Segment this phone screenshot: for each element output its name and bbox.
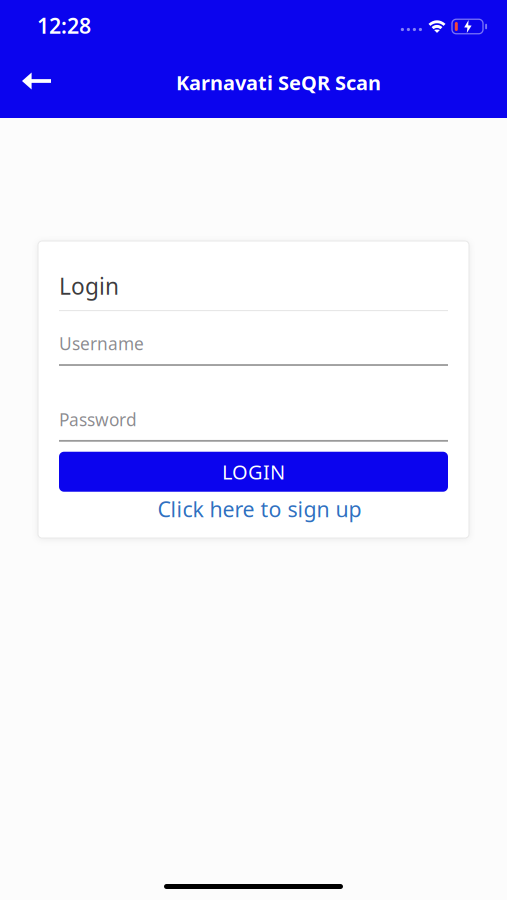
staticText: 12:28 [37,11,91,40]
textField[interactable]: Username [59,332,448,366]
button[interactable]: Click here to sign up [59,495,448,523]
staticText: LOGIN [222,458,285,485]
button[interactable]: Back [0,62,51,103]
staticText: Username [59,332,144,355]
staticText: Karnavati SeQR Scan [176,69,381,96]
staticText: Click here to sign up [157,495,361,523]
staticText: Login [59,271,119,301]
staticText: Password [59,408,137,431]
textField[interactable]: Password [59,408,448,442]
button[interactable]: LOGIN [59,452,448,492]
